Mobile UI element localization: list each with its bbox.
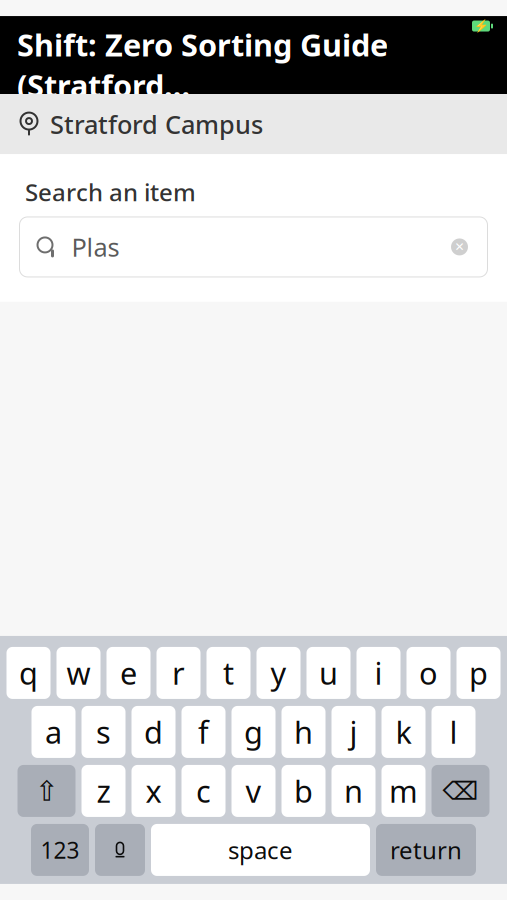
button[interactable]: w [56,647,100,699]
button[interactable]: q [6,647,50,699]
staticText: w [66,653,90,693]
button[interactable]: r [156,647,200,699]
staticText: y [270,653,286,693]
button[interactable]: k [381,706,425,758]
button[interactable]: u [306,647,350,699]
button[interactable]: Plas [19,217,487,277]
button[interactable]: return [376,824,476,876]
button[interactable]: l [431,706,475,758]
staticText: ⚡ [473,19,488,33]
staticText: u [319,653,338,693]
staticText: l [449,712,457,752]
button[interactable]: a [31,706,75,758]
button[interactable]: s [81,706,125,758]
staticText: d [144,712,163,752]
staticText: space [228,834,293,866]
staticText: g [244,712,263,752]
staticText: a [45,712,62,752]
button[interactable]: x [131,765,175,817]
staticText: f [198,712,209,752]
button[interactable]: t [206,647,250,699]
button[interactable]: n [331,765,375,817]
button[interactable]: m [381,765,425,817]
staticText: j [349,712,357,752]
staticText: e [120,653,137,693]
staticText: s [96,712,111,752]
staticText: b [294,771,313,811]
button[interactable]: Delete [431,765,489,817]
staticText: i [374,653,382,693]
staticText: 123 [40,835,79,865]
button[interactable]: g [231,706,275,758]
staticText: ⇧ [35,775,58,807]
button[interactable]: o [406,647,450,699]
button[interactable]: v [231,765,275,817]
staticText: z [96,771,110,811]
staticText: k [395,712,411,752]
button[interactable]: d [131,706,175,758]
button[interactable]: space [151,824,370,876]
staticText: return [390,834,462,866]
button[interactable]: p [456,647,500,699]
button[interactable]: f [181,706,225,758]
staticText: ⌫ [442,777,478,805]
button[interactable]: 123 [31,824,89,876]
staticText: h [294,712,313,752]
staticText: p [469,653,488,693]
button[interactable]: j [331,706,375,758]
button[interactable]: z [81,765,125,817]
button[interactable]: b [281,765,325,817]
staticText: c [196,771,211,811]
staticText: t [223,653,234,693]
button[interactable]: Stratford Campus [0,94,507,154]
button[interactable]: e [106,647,150,699]
staticText: Search an item [25,176,196,208]
button[interactable]: y [256,647,300,699]
button[interactable]: Shift [17,765,75,817]
staticText: o [419,653,438,693]
staticText: q [19,653,38,693]
staticText: n [344,771,363,811]
staticText: v [245,771,261,811]
button[interactable]: c [181,765,225,817]
staticText: Stratford Campus [50,107,263,141]
staticText: ✕ [454,240,464,254]
button[interactable]: Dictation [95,824,145,876]
staticText: Shift: Zero Sorting Guide (Stratford… [17,24,388,106]
staticText: r [172,653,185,693]
staticText: m [389,771,418,811]
button[interactable]: h [281,706,325,758]
staticText: Plas [71,230,119,264]
staticText: x [145,771,161,811]
button[interactable]: i [356,647,400,699]
